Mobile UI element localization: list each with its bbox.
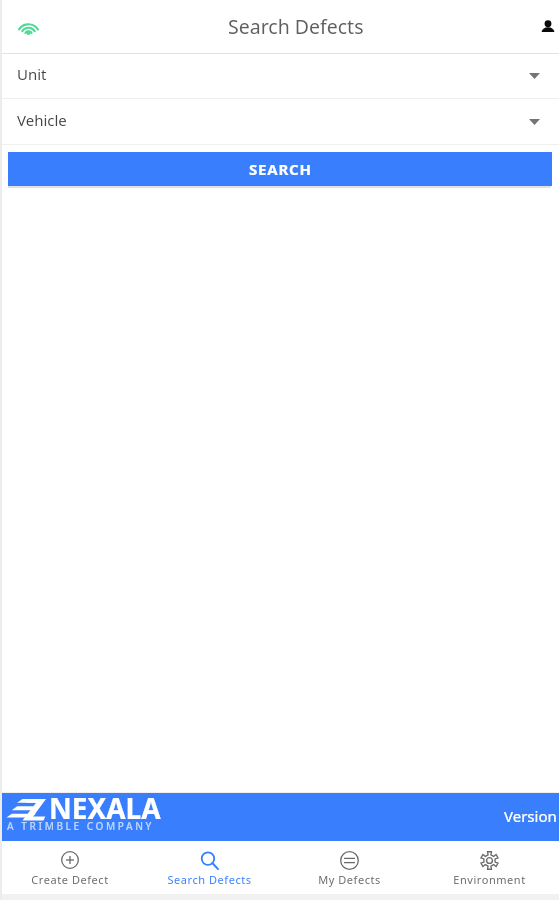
staticText: A TRIMBLE COMPANY [7,819,154,833]
staticText: SEARCH [249,159,312,179]
button[interactable]: SEARCH [8,152,552,186]
button[interactable]: Account [533,12,559,42]
staticText: NEXALA [49,789,161,827]
staticText: Search Defects [228,13,364,40]
staticText: Search Defects [167,872,252,887]
staticText: Vehicle [17,110,67,130]
staticText: Version [504,806,557,826]
staticText: Environment [453,872,526,887]
button[interactable]: Search Defects [139,841,279,894]
button[interactable]: Vehicle [0,99,559,144]
button[interactable]: Environment [419,841,559,894]
button[interactable]: Create Defect [0,841,139,894]
staticText: Unit [17,64,47,84]
staticText: My Defects [318,872,381,887]
button[interactable]: My Defects [279,841,419,894]
staticText: Create Defect [31,872,109,887]
button[interactable]: Network status [10,8,46,44]
button[interactable]: Unit [0,54,559,98]
